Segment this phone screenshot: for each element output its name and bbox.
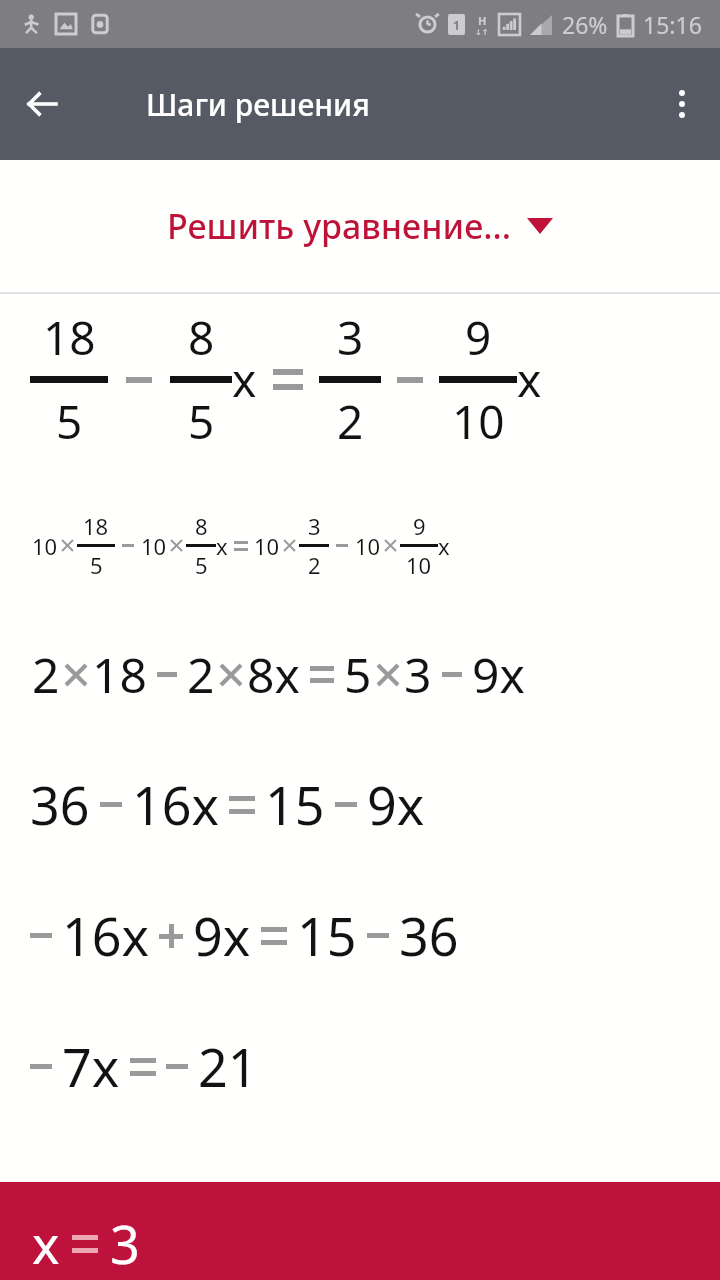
- button[interactable]: Решить уравнение...: [0, 160, 720, 292]
- staticText: x: [232, 348, 257, 411]
- staticText: 8x: [247, 642, 300, 707]
- staticText: 2: [337, 390, 364, 453]
- staticText: Решить уравнение...: [167, 203, 511, 249]
- staticText: 10: [254, 531, 280, 561]
- staticText: 16x: [132, 769, 219, 840]
- staticText: 5: [90, 550, 103, 580]
- staticText: 10: [141, 531, 167, 561]
- staticText: 3: [337, 306, 364, 369]
- staticText: x: [216, 531, 228, 561]
- staticText: 18: [92, 642, 147, 707]
- staticText: 9x: [367, 769, 425, 840]
- staticText: 26%: [562, 9, 608, 40]
- staticText: 8: [195, 511, 208, 541]
- staticText: 15:16: [643, 9, 702, 40]
- staticText: 3: [308, 511, 321, 541]
- staticText: 7x: [62, 1031, 120, 1102]
- staticText: x: [32, 1208, 60, 1279]
- staticText: 16x: [62, 900, 149, 971]
- staticText: 2: [308, 550, 321, 580]
- button[interactable]: More options: [654, 76, 710, 132]
- staticText: 15: [297, 900, 357, 971]
- button[interactable]: Back: [14, 76, 70, 132]
- staticText: 15: [265, 769, 325, 840]
- staticText: 10: [355, 531, 381, 561]
- staticText: 3: [110, 1208, 140, 1279]
- staticText: Шаги решения: [146, 84, 370, 125]
- staticText: 8: [188, 306, 215, 369]
- staticText: 9x: [193, 900, 251, 971]
- staticText: 2: [187, 642, 215, 707]
- staticText: x: [438, 531, 450, 561]
- staticText: 2: [32, 642, 60, 707]
- staticText: 5: [195, 550, 208, 580]
- staticText: H: [478, 13, 487, 28]
- staticText: 18: [43, 306, 96, 369]
- staticText: 1: [453, 17, 460, 33]
- staticText: 5: [344, 642, 372, 707]
- staticText: ↓↑: [475, 28, 489, 37]
- button[interactable]: x: [0, 1182, 720, 1280]
- staticText: 10: [32, 531, 58, 561]
- staticText: x: [517, 348, 542, 411]
- staticText: 18: [83, 511, 109, 541]
- staticText: 5: [188, 390, 215, 453]
- staticText: 10: [452, 390, 505, 453]
- staticText: 36: [399, 900, 459, 971]
- staticText: 5: [56, 390, 83, 453]
- staticText: 9x: [472, 642, 525, 707]
- staticText: 21: [198, 1031, 258, 1102]
- staticText: 36: [30, 769, 90, 840]
- staticText: 9: [413, 511, 426, 541]
- staticText: 10: [406, 550, 432, 580]
- staticText: 3: [404, 642, 432, 707]
- staticText: 9: [465, 306, 492, 369]
